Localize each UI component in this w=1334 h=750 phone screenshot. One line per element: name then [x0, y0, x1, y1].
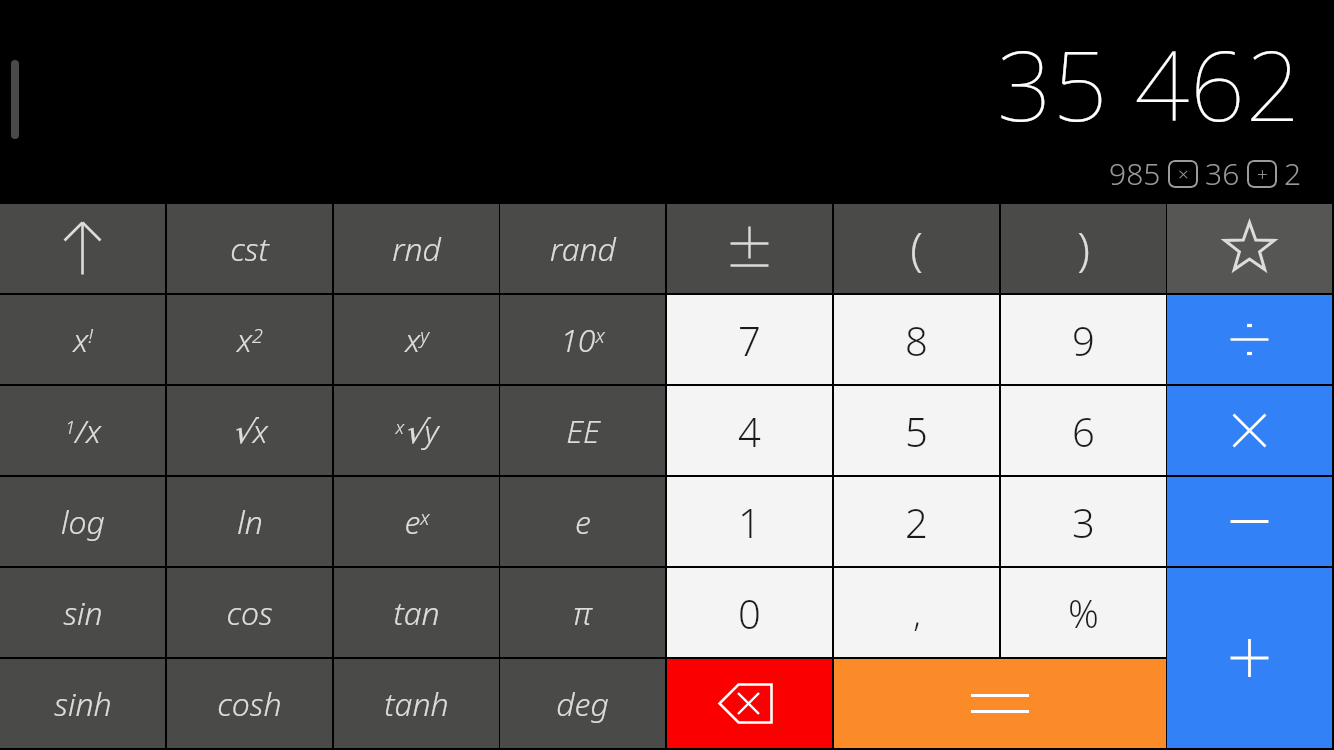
- button[interactable]: sinh: [0, 659, 165, 748]
- button[interactable]: ,: [834, 568, 999, 657]
- staticText: x√y: [395, 409, 439, 453]
- button[interactable]: EE: [500, 386, 665, 475]
- staticText: 0: [738, 586, 761, 640]
- staticText: 36: [1205, 153, 1240, 194]
- staticText: 10x: [560, 318, 605, 362]
- staticText: EE: [566, 409, 600, 453]
- staticText: 35 462: [997, 18, 1302, 149]
- staticText: √x: [232, 409, 268, 453]
- staticText: tan: [393, 591, 440, 635]
- staticText: 1/x: [65, 409, 101, 453]
- button[interactable]: x2: [167, 295, 332, 384]
- button[interactable]: 10x: [500, 295, 665, 384]
- staticText: xy: [405, 318, 429, 362]
- button[interactable]: 1: [667, 477, 832, 566]
- button[interactable]: 0: [667, 568, 832, 657]
- button[interactable]: xy: [334, 295, 499, 384]
- staticText: ln: [237, 500, 263, 544]
- staticText: x2: [237, 318, 263, 362]
- button[interactable]: Equals: [834, 659, 1166, 748]
- button[interactable]: π: [500, 568, 665, 657]
- staticText: ex: [404, 500, 430, 544]
- button[interactable]: rnd: [334, 204, 499, 293]
- staticText: π: [573, 591, 592, 635]
- button[interactable]: tan: [334, 568, 499, 657]
- button[interactable]: log: [0, 477, 165, 566]
- staticText: log: [61, 500, 105, 544]
- staticText: rand: [550, 227, 616, 271]
- staticText: cst: [230, 227, 269, 271]
- button[interactable]: Plus minus: [667, 204, 832, 293]
- button[interactable]: (: [834, 204, 999, 293]
- button[interactable]: ln: [167, 477, 332, 566]
- staticText: +: [1257, 161, 1268, 187]
- button[interactable]: Minus: [1167, 477, 1332, 566]
- staticText: 2: [905, 495, 928, 549]
- staticText: cosh: [217, 682, 282, 726]
- button[interactable]: 7: [667, 295, 832, 384]
- staticText: ×: [1178, 161, 1189, 187]
- staticText: 5: [905, 404, 928, 458]
- staticText: 8: [905, 313, 928, 367]
- staticText: 985: [1109, 153, 1161, 194]
- button[interactable]: Delete: [667, 659, 832, 748]
- button[interactable]: %: [1001, 568, 1166, 657]
- staticText: 6: [1072, 404, 1095, 458]
- button[interactable]: cosh: [167, 659, 332, 748]
- button[interactable]: 6: [1001, 386, 1166, 475]
- button[interactable]: ): [1001, 204, 1166, 293]
- staticText: cos: [226, 591, 273, 635]
- button[interactable]: e: [500, 477, 665, 566]
- staticText: e: [575, 500, 591, 544]
- button[interactable]: √x: [167, 386, 332, 475]
- staticText: sin: [63, 591, 103, 635]
- button[interactable]: Plus: [1167, 568, 1332, 748]
- button[interactable]: Shift: [0, 204, 165, 293]
- staticText: sinh: [54, 682, 112, 726]
- button[interactable]: Divide: [1167, 295, 1332, 384]
- button[interactable]: x!: [0, 295, 165, 384]
- button[interactable]: cst: [167, 204, 332, 293]
- staticText: 3: [1072, 495, 1095, 549]
- staticText: 1: [738, 495, 761, 549]
- button[interactable]: 3: [1001, 477, 1166, 566]
- button[interactable]: cos: [167, 568, 332, 657]
- staticText: tanh: [384, 682, 449, 726]
- button[interactable]: 2: [834, 477, 999, 566]
- button[interactable]: deg: [500, 659, 665, 748]
- staticText: ): [1077, 217, 1090, 280]
- staticText: (: [910, 217, 923, 280]
- button[interactable]: 4: [667, 386, 832, 475]
- button[interactable]: tanh: [334, 659, 499, 748]
- button[interactable]: 8: [834, 295, 999, 384]
- staticText: 2: [1284, 153, 1302, 194]
- staticText: deg: [556, 682, 609, 726]
- button[interactable]: x√y: [334, 386, 499, 475]
- staticText: ,: [913, 590, 921, 636]
- staticText: 4: [738, 404, 761, 458]
- staticText: 7: [738, 313, 761, 367]
- button[interactable]: 9: [1001, 295, 1166, 384]
- button[interactable]: Multiply: [1167, 386, 1332, 475]
- button[interactable]: Favorite: [1167, 204, 1332, 293]
- staticText: x!: [73, 318, 93, 362]
- button[interactable]: ex: [334, 477, 499, 566]
- staticText: 9: [1072, 313, 1095, 367]
- button[interactable]: 1/x: [0, 386, 165, 475]
- button[interactable]: 5: [834, 386, 999, 475]
- staticText: rnd: [392, 227, 441, 271]
- button[interactable]: sin: [0, 568, 165, 657]
- staticText: %: [1068, 587, 1099, 639]
- button[interactable]: rand: [500, 204, 665, 293]
